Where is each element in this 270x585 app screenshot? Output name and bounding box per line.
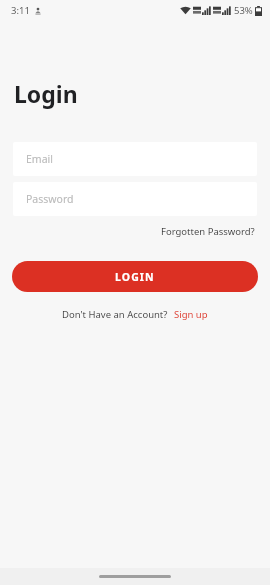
button[interactable]: Password: [13, 182, 257, 216]
button[interactable]: Sign up: [173, 306, 209, 323]
button[interactable]: Email: [13, 142, 257, 176]
staticText: 53%: [234, 4, 253, 17]
staticText: Login: [14, 78, 78, 109]
staticText: Don't Have an Account?: [62, 308, 168, 321]
staticText: Password: [26, 192, 74, 206]
staticText: 3:11: [11, 4, 30, 17]
button[interactable]: Forgotten Password?: [159, 223, 257, 240]
staticText: Email: [26, 152, 53, 166]
button[interactable]: LOGIN: [12, 261, 258, 292]
staticText: LOGIN: [115, 270, 155, 284]
